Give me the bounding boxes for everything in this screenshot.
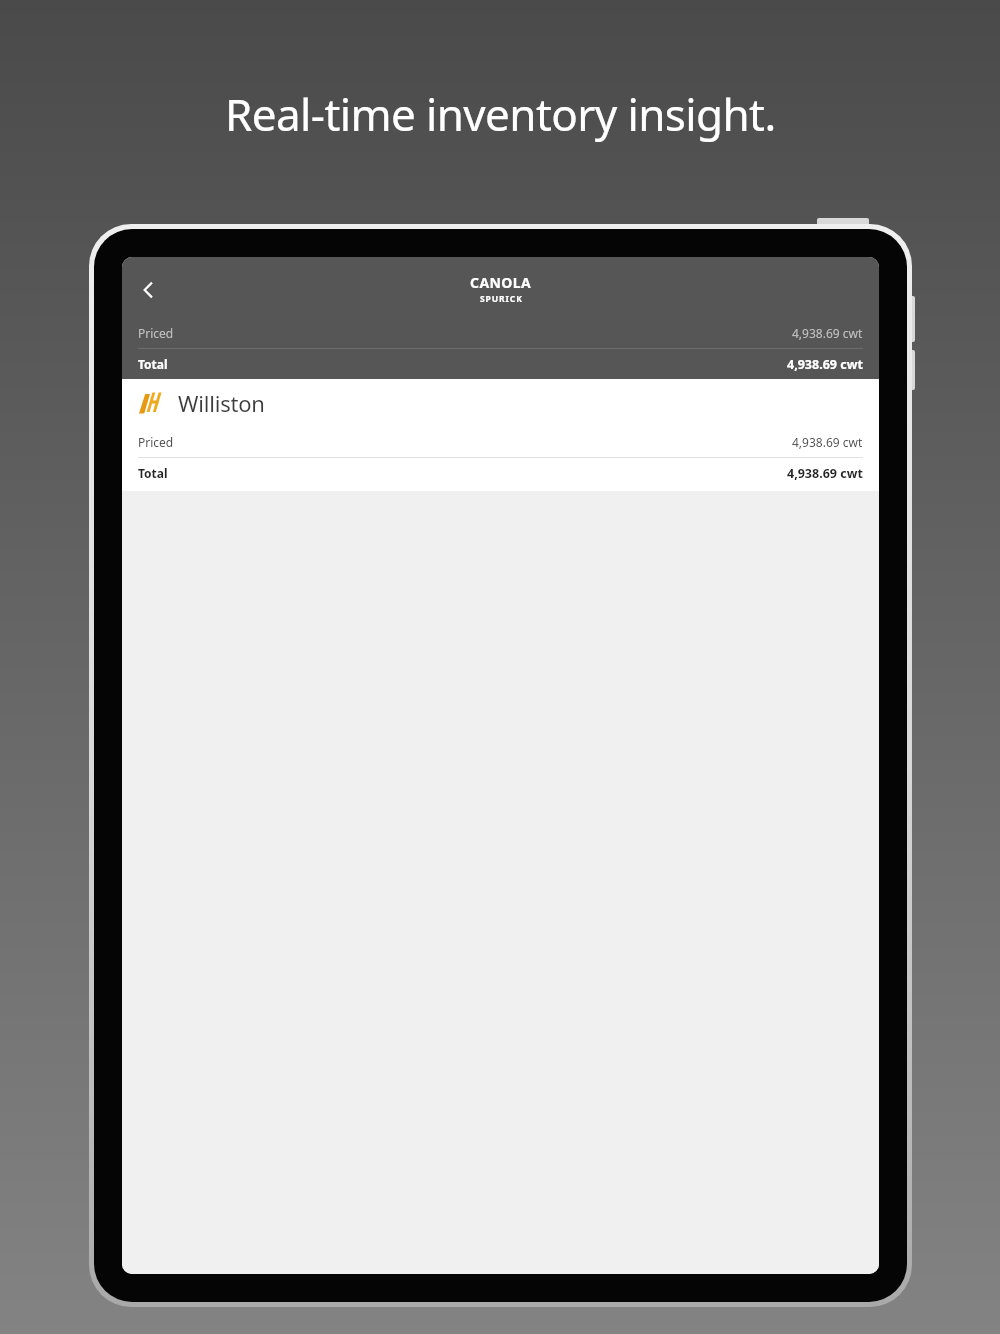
- staticText: 4,938.69 cwt: [787, 356, 863, 373]
- staticText: SPURICK: [480, 293, 523, 305]
- button[interactable]: Back: [126, 268, 170, 312]
- staticText: 4,938.69 cwt: [792, 325, 863, 341]
- staticText: Priced: [138, 325, 174, 341]
- staticText: Priced: [138, 434, 174, 450]
- staticText: 4,938.69 cwt: [792, 434, 863, 450]
- staticText: Williston: [178, 388, 265, 418]
- staticText: Total: [138, 356, 168, 372]
- staticText: CANOLA: [470, 273, 532, 292]
- staticText: 4,938.69 cwt: [787, 465, 863, 482]
- staticText: Real-time inventory insight.: [225, 84, 776, 144]
- button[interactable]: Williston: [122, 379, 879, 491]
- staticText: Total: [138, 465, 168, 481]
